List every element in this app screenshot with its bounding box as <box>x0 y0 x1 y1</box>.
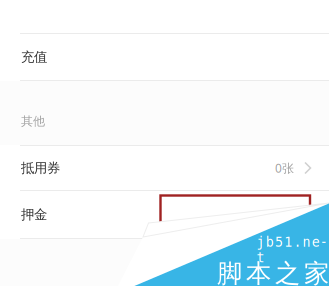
button[interactable]: 充值 <box>0 34 329 80</box>
button[interactable]: 抵用券 <box>0 146 329 190</box>
staticText: 脚本之家 <box>217 258 329 286</box>
button[interactable]: 押金 <box>0 191 329 238</box>
staticText: 0张 <box>275 160 294 176</box>
staticText: 其他 <box>21 114 45 129</box>
staticText: 抵用券 <box>21 160 60 176</box>
staticText: jb51.net <box>257 234 329 250</box>
staticText: 押金 <box>21 206 47 223</box>
staticText: 充值 <box>21 49 47 65</box>
